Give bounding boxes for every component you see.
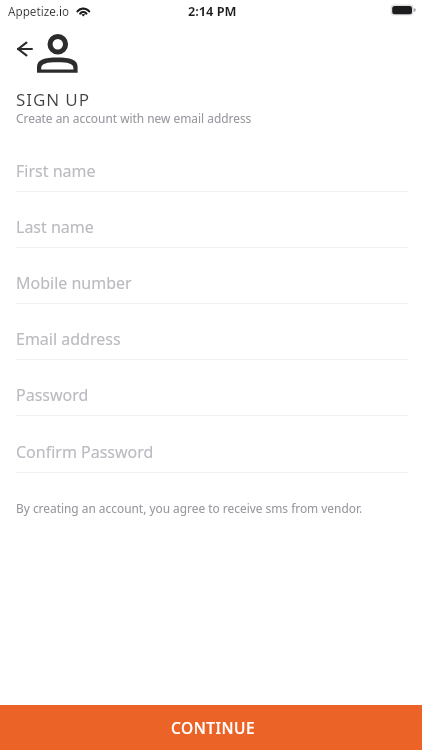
button[interactable]: Back <box>9 33 41 65</box>
button[interactable]: Mobile number <box>0 257 422 313</box>
staticText: Appetize.io <box>8 3 69 19</box>
button[interactable]: Password <box>0 369 422 425</box>
staticText: Mobile number <box>16 272 132 294</box>
other: Battery full <box>390 4 418 16</box>
staticText: Last name <box>16 216 94 238</box>
other: Wi-Fi signal <box>75 3 93 17</box>
button[interactable]: First name <box>0 145 422 201</box>
staticText: Password <box>16 384 89 406</box>
staticText: Create an account with new email address <box>16 110 252 126</box>
staticText: SIGN UP <box>16 88 90 111</box>
staticText: By creating an account, you agree to rec… <box>16 500 363 516</box>
button[interactable]: CONTINUE <box>0 705 422 750</box>
button[interactable]: Email address <box>0 313 422 369</box>
staticText: 2:14 PM <box>188 2 237 19</box>
staticText: CONTINUE <box>171 717 256 738</box>
staticText: Confirm Password <box>16 441 154 463</box>
button[interactable]: Confirm Password <box>0 426 422 482</box>
staticText: First name <box>16 160 96 182</box>
button[interactable]: Last name <box>0 201 422 257</box>
other: Account <box>36 32 80 76</box>
staticText: Email address <box>16 328 121 350</box>
